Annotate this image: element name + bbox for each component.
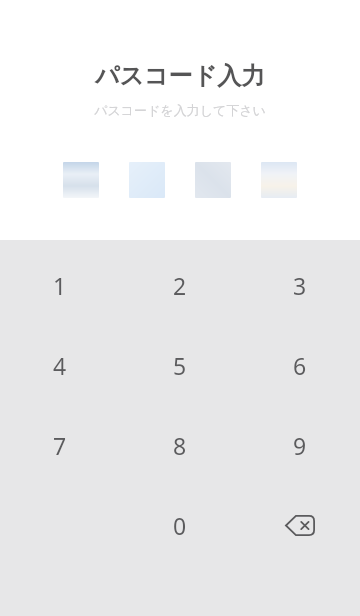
button[interactable]: Theme preview [261, 162, 297, 198]
button[interactable]: 8 [143, 408, 217, 482]
button[interactable]: 0 [143, 488, 217, 562]
button[interactable]: 9 [263, 408, 337, 482]
staticText: 0 [173, 510, 187, 541]
button[interactable]: Delete [263, 488, 337, 562]
staticText: 2 [173, 270, 187, 301]
button[interactable]: 5 [143, 328, 217, 402]
staticText: パスコード入力 [0, 61, 360, 91]
staticText: 3 [293, 270, 307, 301]
staticText: 9 [293, 430, 307, 461]
staticText: 7 [53, 430, 67, 461]
button[interactable]: Theme preview [63, 162, 99, 198]
button[interactable]: 3 [263, 248, 337, 322]
staticText: 5 [173, 350, 187, 381]
button[interactable]: 6 [263, 328, 337, 402]
staticText: パスコードを入力して下さい [0, 102, 360, 118]
button[interactable]: 7 [23, 408, 97, 482]
staticText: 8 [173, 430, 187, 461]
staticText: 6 [293, 350, 307, 381]
button[interactable]: 2 [143, 248, 217, 322]
button[interactable]: 1 [23, 248, 97, 322]
staticText: 1 [53, 270, 67, 301]
staticText: 4 [53, 350, 67, 381]
button[interactable]: 4 [23, 328, 97, 402]
